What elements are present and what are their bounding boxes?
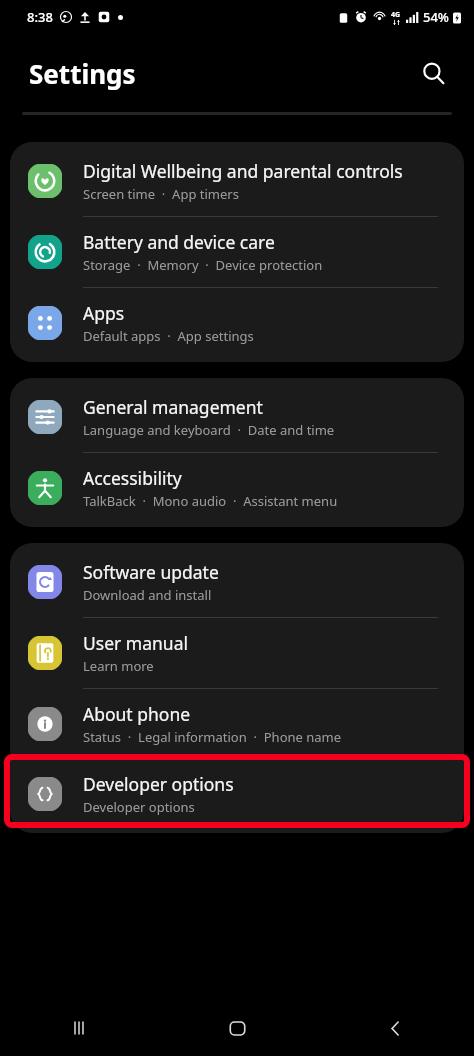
button[interactable]: Developer options — [10, 759, 464, 829]
staticText: 8:38 — [27, 8, 53, 26]
staticText: Developer options — [83, 798, 195, 816]
button[interactable]: Recent apps — [0, 1000, 158, 1056]
staticText: TalkBack · Mono audio · Assistant menu — [83, 492, 338, 510]
staticText: Learn more — [83, 657, 154, 675]
staticText: Storage · Memory · Device protection — [83, 256, 323, 274]
staticText: 54% — [423, 8, 449, 26]
staticText: Settings — [29, 56, 136, 91]
staticText: Digital Wellbeing and parental controls — [83, 159, 403, 183]
staticText: Software update — [83, 560, 219, 584]
button[interactable]: About phone — [10, 689, 464, 759]
staticText: General management — [83, 395, 263, 419]
staticText: Battery and device care — [83, 230, 275, 254]
staticText: Apps — [83, 301, 125, 325]
staticText: Accessibility — [83, 466, 182, 490]
staticText: 4G — [391, 10, 401, 20]
staticText: Default apps · App settings — [83, 327, 254, 345]
staticText: User manual — [83, 631, 188, 655]
button[interactable]: Battery and device care — [10, 217, 464, 287]
button[interactable]: General management — [10, 382, 464, 452]
button[interactable]: Apps — [10, 288, 464, 358]
staticText: Download and install — [83, 586, 212, 604]
staticText: Developer options — [83, 772, 234, 796]
button[interactable]: Back — [316, 1000, 474, 1056]
button[interactable]: Software update — [10, 547, 464, 617]
staticText: Language and keyboard · Date and time — [83, 421, 335, 439]
button[interactable]: Home — [158, 1000, 316, 1056]
staticText: About phone — [83, 702, 191, 726]
button[interactable]: User manual — [10, 618, 464, 688]
button[interactable]: Digital Wellbeing and parental controls — [10, 146, 464, 216]
staticText: Status · Legal information · Phone name — [83, 728, 342, 746]
button[interactable]: Search — [410, 50, 456, 96]
button[interactable]: Accessibility — [10, 453, 464, 523]
staticText: Screen time · App timers — [83, 185, 239, 203]
